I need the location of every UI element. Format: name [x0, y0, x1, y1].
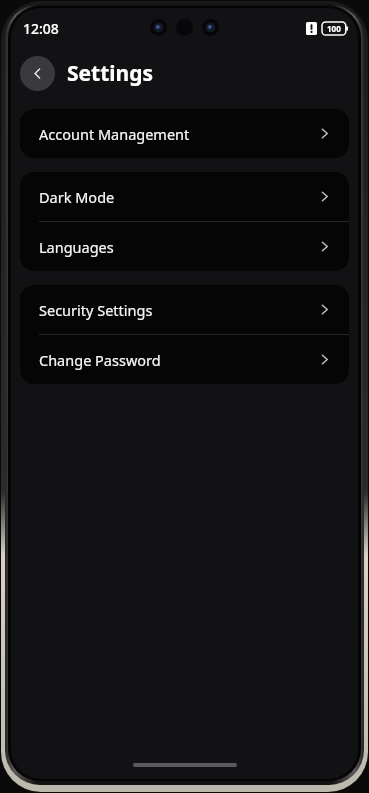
staticText: Settings	[67, 59, 154, 88]
button[interactable]: Security Settings	[20, 285, 349, 334]
button[interactable]: Languages	[20, 222, 349, 271]
button[interactable]: Change Password	[20, 335, 349, 384]
button[interactable]: Account Management	[20, 109, 349, 158]
button[interactable]: Dark Mode	[20, 172, 349, 221]
staticText: Dark Mode	[39, 187, 317, 207]
button[interactable]: Back	[20, 56, 55, 91]
staticText: Change Password	[39, 350, 317, 370]
staticText: 100	[327, 23, 341, 34]
staticText: 12:08	[23, 19, 59, 38]
staticText: Account Management	[39, 124, 317, 144]
staticText: Security Settings	[39, 300, 317, 320]
staticText: Languages	[39, 237, 317, 257]
